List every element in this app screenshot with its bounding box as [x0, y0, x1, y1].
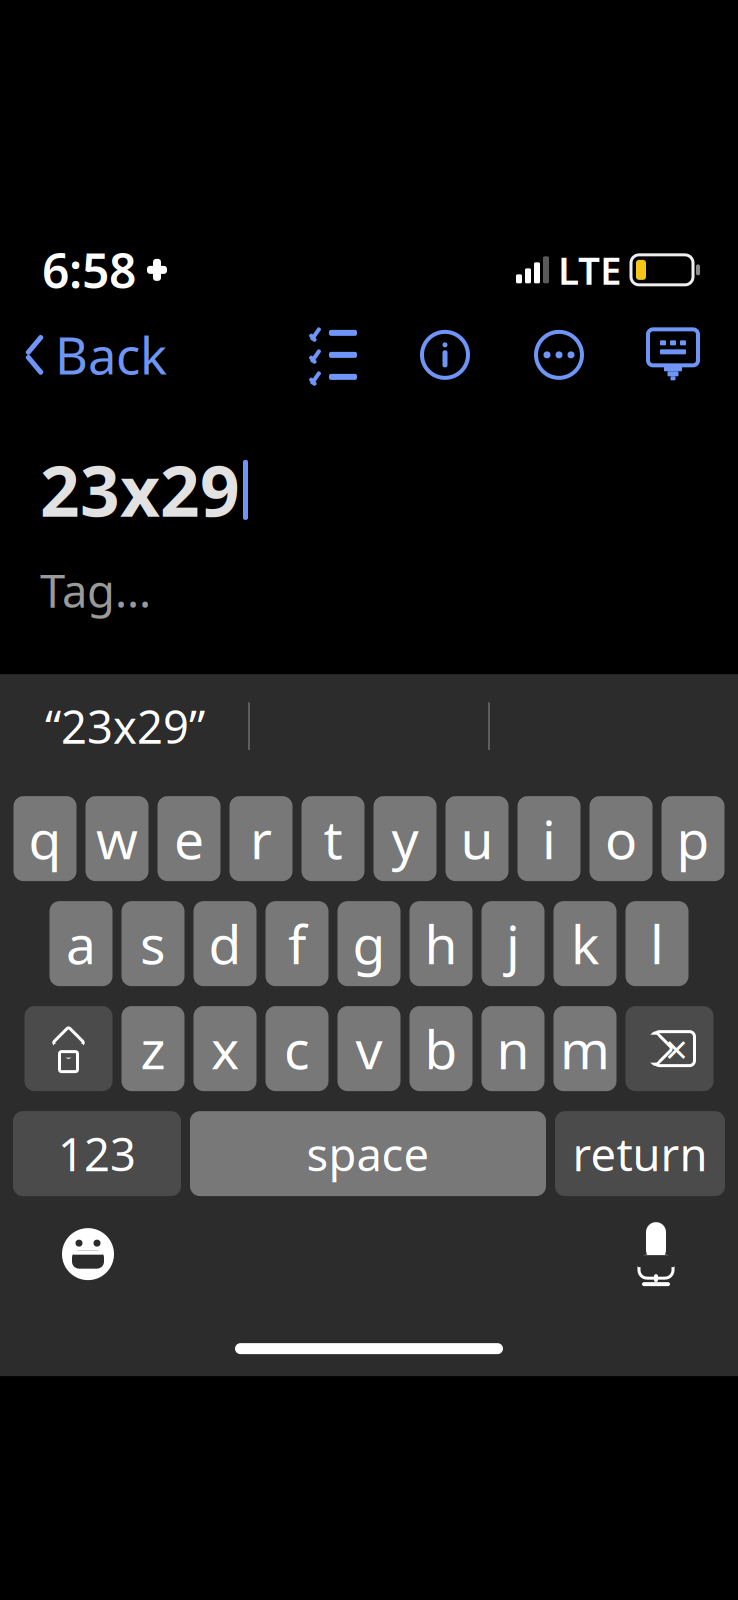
button[interactable]: z [121, 1006, 184, 1091]
staticText: a [66, 908, 96, 979]
button[interactable]: g [337, 901, 400, 986]
staticText: return [572, 1123, 707, 1184]
button[interactable]: t [301, 796, 364, 881]
button[interactable]: Shift [24, 1006, 112, 1091]
button[interactable]: Info [406, 316, 484, 394]
staticText: space [306, 1123, 429, 1184]
button[interactable]: 123 [13, 1111, 181, 1196]
button[interactable]: u [445, 796, 508, 881]
staticText: “23x29” [45, 696, 205, 756]
staticText: d [208, 908, 241, 979]
staticText: Tag... [40, 560, 151, 620]
button[interactable]: o [589, 796, 652, 881]
staticText: o [605, 803, 637, 874]
button[interactable]: Delete [625, 1006, 713, 1091]
button[interactable]: i [517, 796, 580, 881]
button[interactable]: Dictate [616, 1204, 696, 1304]
staticText: b [424, 1013, 457, 1084]
staticText: m [560, 1013, 610, 1084]
staticText: w [96, 803, 138, 874]
button[interactable]: v [337, 1006, 400, 1091]
staticText: g [352, 908, 385, 979]
staticText: x [211, 1013, 239, 1084]
staticText: s [140, 908, 166, 979]
staticText: k [571, 908, 599, 979]
button[interactable]: m [553, 1006, 616, 1091]
button[interactable]: l [625, 901, 688, 986]
button[interactable]: x [193, 1006, 256, 1091]
staticText: u [460, 803, 493, 874]
button[interactable]: s [121, 901, 184, 986]
staticText: Back [55, 321, 167, 388]
button[interactable]: n [481, 1006, 544, 1091]
button[interactable]: p [661, 796, 724, 881]
button[interactable]: Back [6, 311, 183, 398]
staticText: e [174, 803, 204, 874]
button[interactable]: Tag... [0, 544, 738, 636]
staticText: i [542, 803, 556, 874]
staticText: y [391, 803, 418, 874]
staticText: 23x29 [40, 444, 240, 536]
button[interactable]: a [49, 901, 112, 986]
staticText: v [355, 1013, 382, 1084]
staticText: c [284, 1013, 310, 1084]
button[interactable]: j [481, 901, 544, 986]
staticText: f [288, 908, 306, 979]
button[interactable]: k [553, 901, 616, 986]
button[interactable]: r [229, 796, 292, 881]
staticText: LTE [558, 244, 622, 295]
button[interactable]: return [555, 1111, 725, 1196]
staticText: 123 [58, 1123, 136, 1184]
button[interactable]: y [373, 796, 436, 881]
staticText: × [665, 1022, 688, 1075]
button[interactable]: q [13, 796, 76, 881]
staticText: l [650, 908, 664, 979]
button[interactable]: c [265, 1006, 328, 1091]
staticText: t [323, 803, 342, 874]
button[interactable]: f [265, 901, 328, 986]
button[interactable]: b [409, 1006, 472, 1091]
button[interactable]: e [157, 796, 220, 881]
staticText: 6:58 [42, 238, 136, 302]
button[interactable]: “23x29” [2, 688, 248, 764]
button[interactable]: Emoji [42, 1208, 134, 1300]
staticText: j [506, 908, 520, 979]
staticText: p [676, 803, 709, 874]
staticText: z [140, 1013, 165, 1084]
button[interactable]: space [190, 1111, 546, 1196]
button[interactable]: More [520, 316, 598, 394]
button[interactable]: w [85, 796, 148, 881]
staticText: n [496, 1013, 529, 1084]
button[interactable]: h [409, 901, 472, 986]
button[interactable]: d [193, 901, 256, 986]
button[interactable]: Hide Keyboard [634, 317, 712, 393]
staticText: h [424, 908, 457, 979]
staticText: r [250, 803, 272, 874]
button[interactable]: Checklist [294, 319, 370, 391]
staticText: q [28, 803, 61, 874]
